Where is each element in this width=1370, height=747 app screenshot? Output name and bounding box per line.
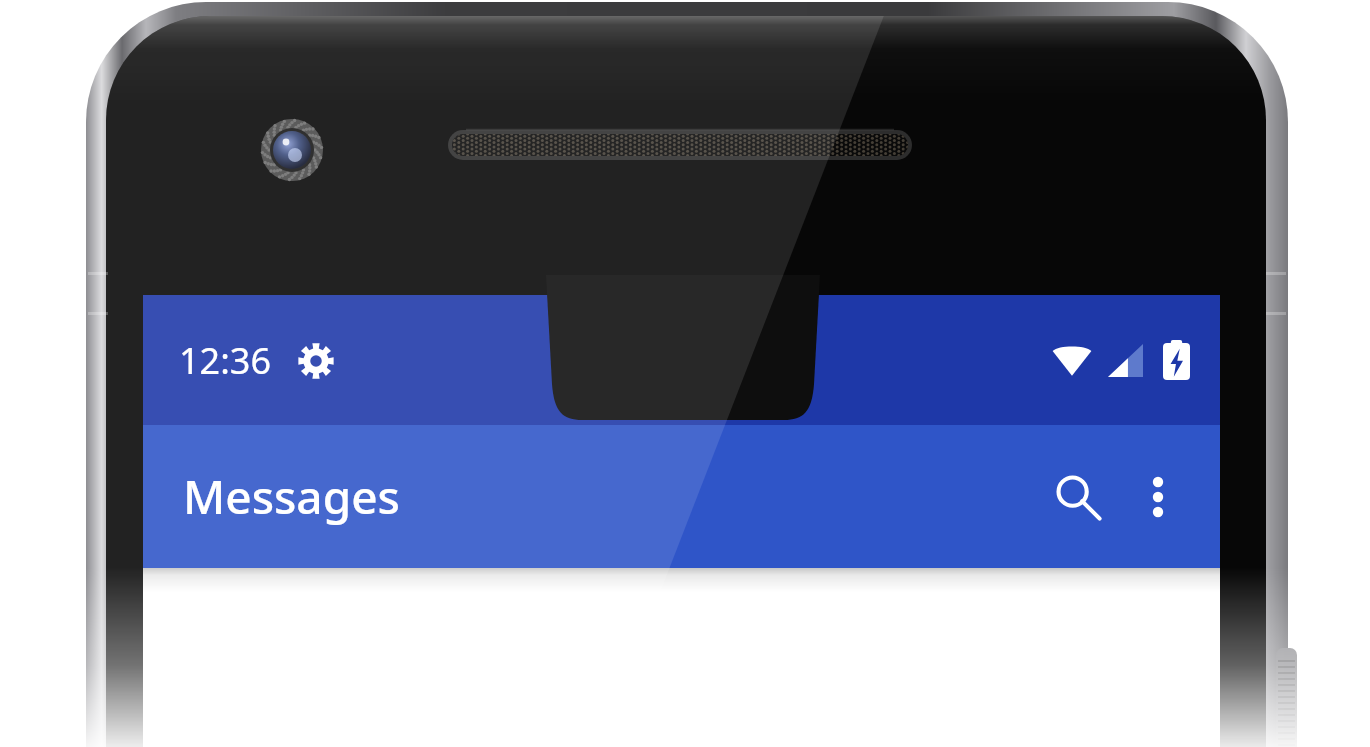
button[interactable]: Search — [1038, 457, 1118, 537]
staticText: 12:36 — [179, 336, 272, 385]
staticText: Messages — [183, 465, 400, 528]
button[interactable]: Settings — [298, 343, 334, 379]
button[interactable]: More options — [1118, 457, 1198, 537]
